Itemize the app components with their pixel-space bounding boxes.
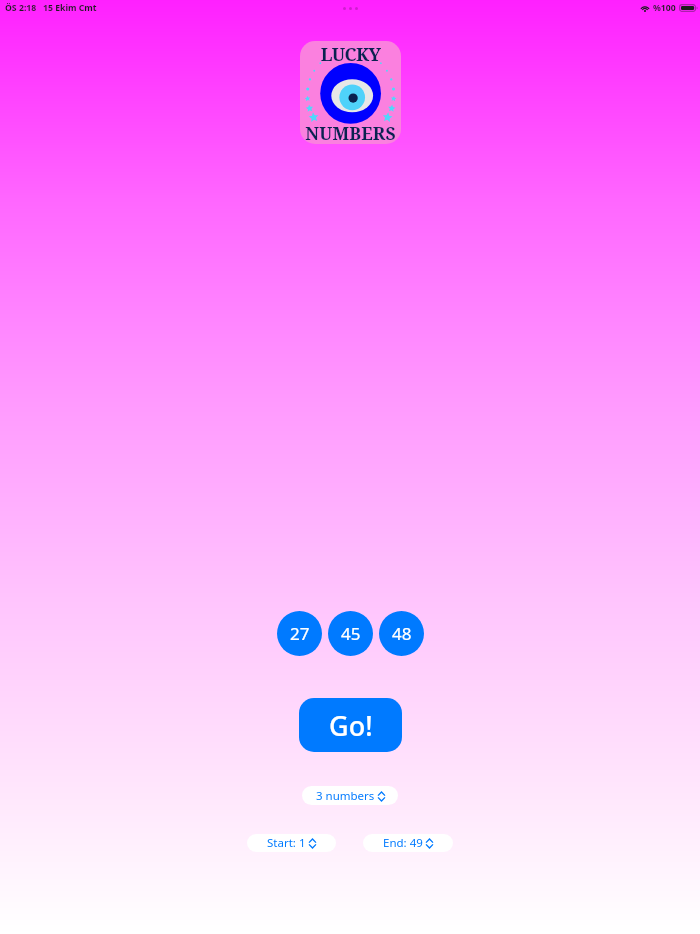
staticText: Go! [329, 707, 373, 744]
button[interactable]: 48 [379, 611, 424, 656]
staticText: %100 [653, 2, 676, 14]
staticText: LUCKY [300, 42, 401, 67]
button[interactable]: 3 numbers [302, 786, 398, 805]
staticText: ÖS 2:18 [5, 2, 37, 14]
button[interactable]: Lucky Numbers logo [300, 41, 401, 144]
other: Wi-Fi [640, 4, 650, 12]
staticText: 15 Ekim Cmt [43, 2, 97, 14]
staticText: 45 [341, 622, 361, 645]
staticText: 27 [290, 622, 310, 645]
staticText: NUMBERS [300, 121, 401, 144]
staticText: End: 49 [383, 835, 423, 851]
button[interactable]: 27 [277, 611, 322, 656]
staticText: 3 numbers [316, 788, 375, 804]
button[interactable]: Start: 1 [247, 834, 336, 852]
other: Battery full [679, 4, 698, 12]
button[interactable]: Go! [299, 698, 402, 752]
button[interactable]: 45 [328, 611, 373, 656]
button[interactable]: End: 49 [363, 834, 453, 852]
staticText: Start: 1 [267, 835, 306, 851]
staticText: 48 [392, 622, 412, 645]
